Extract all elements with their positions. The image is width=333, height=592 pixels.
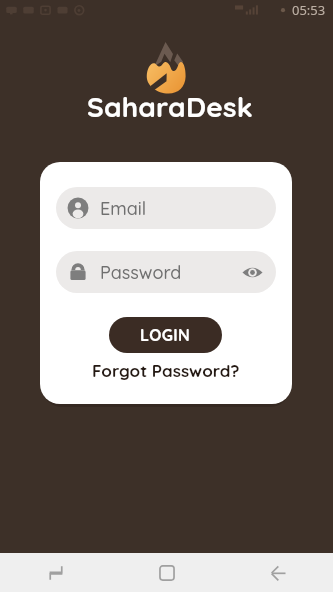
staticText: Password (100, 261, 182, 284)
staticText: SaharaDesk (87, 89, 253, 124)
button[interactable]: Email (56, 187, 276, 229)
button[interactable]: Recents (0, 553, 111, 592)
button[interactable]: Back (222, 553, 333, 592)
button[interactable]: Forgot Password? (92, 360, 240, 381)
button[interactable]: LOGIN (109, 317, 222, 353)
button[interactable]: Password (56, 251, 276, 293)
staticText: LOGIN (140, 325, 191, 345)
staticText: 05:53 (292, 1, 326, 19)
button[interactable]: Show password (240, 260, 264, 284)
button[interactable]: Home (111, 553, 222, 592)
staticText: Email (100, 197, 147, 220)
